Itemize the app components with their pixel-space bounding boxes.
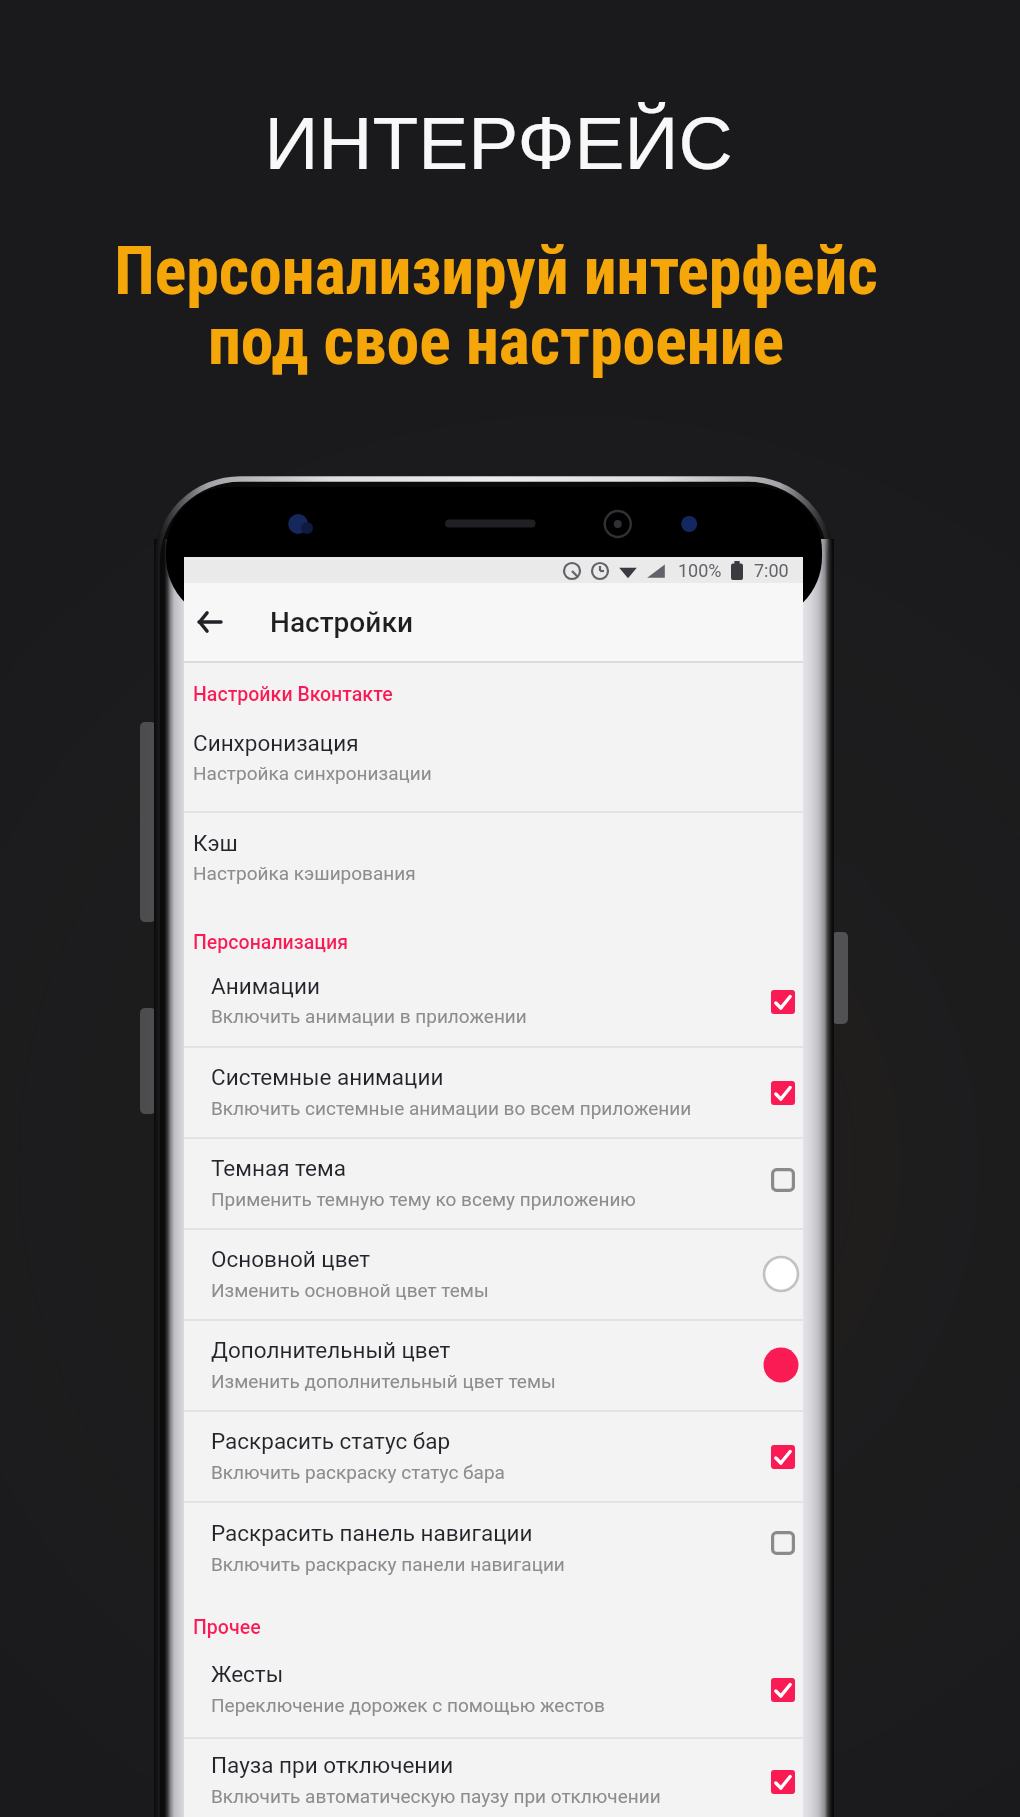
staticText: Применить темную тему ко всему приложени… [211, 1188, 636, 1210]
button[interactable]: Toggle [771, 1168, 795, 1192]
button[interactable]: Back [184, 583, 234, 661]
staticText: Настройки [270, 606, 413, 639]
button[interactable]: Кэш [184, 817, 803, 909]
button[interactable]: Primary colour [762, 1255, 800, 1293]
staticText: Изменить дополнительный цвет темы [211, 1370, 556, 1392]
staticText: 100% [678, 560, 722, 581]
staticText: Включить анимации в приложении [211, 1005, 527, 1027]
staticText: Включить раскраску статус бара [211, 1461, 505, 1483]
staticText: Синхронизация [193, 730, 359, 756]
button[interactable]: Системные анимации [184, 1051, 803, 1143]
button[interactable]: Синхронизация [184, 717, 803, 809]
staticText: Пауза при отключении [211, 1752, 454, 1778]
button[interactable]: Toggle [771, 1678, 795, 1702]
staticText: Переключение дорожек с помощью жестов [211, 1694, 605, 1716]
button[interactable]: Toggle [771, 1081, 795, 1105]
button[interactable]: Toggle [771, 1445, 795, 1469]
staticText: Изменить основной цвет темы [211, 1279, 489, 1301]
button[interactable]: Дополнительный цвет [184, 1324, 803, 1416]
button[interactable]: Жесты [184, 1648, 803, 1740]
button[interactable]: Toggle [771, 990, 795, 1014]
staticText: Настройки Вконтакте [193, 683, 393, 706]
button[interactable]: Раскрасить панель навигации [184, 1507, 803, 1599]
staticText: 7:00 [754, 560, 789, 581]
staticText: Основной цвет [211, 1246, 371, 1272]
button[interactable]: Темная тема [184, 1142, 803, 1234]
button[interactable]: Раскрасить статус бар [184, 1415, 803, 1507]
staticText: Включить автоматическую паузу при отключ… [211, 1785, 661, 1807]
staticText: Дополнительный цвет [211, 1337, 451, 1363]
staticText: Настройка кэширования [193, 862, 416, 884]
staticText: Раскрасить панель навигации [211, 1520, 533, 1546]
staticText: Кэш [193, 830, 238, 856]
staticText: Настройка синхронизации [193, 762, 432, 784]
staticText: Темная тема [211, 1155, 346, 1181]
button[interactable]: Toggle [771, 1531, 795, 1555]
button[interactable]: Accent colour [762, 1346, 800, 1384]
staticText: Включить раскраску панели навигации [211, 1553, 565, 1575]
button[interactable]: Пауза при отключении [184, 1739, 803, 1817]
staticText: Прочее [193, 1616, 261, 1639]
button[interactable]: Основной цвет [184, 1233, 803, 1325]
staticText: Включить системные анимации во всем прил… [211, 1097, 692, 1119]
staticText: Жесты [211, 1661, 284, 1687]
staticText: ИНТЕРФЕЙС [264, 101, 733, 185]
staticText: Системные анимации [211, 1064, 444, 1090]
staticText: Раскрасить статус бар [211, 1428, 451, 1454]
staticText: Анимации [211, 973, 320, 999]
button[interactable]: Toggle [771, 1770, 795, 1794]
staticText: Персонализируй интерфейс под свое настро… [114, 233, 878, 380]
button[interactable]: Анимации [184, 960, 803, 1052]
staticText: Персонализация [193, 931, 349, 954]
